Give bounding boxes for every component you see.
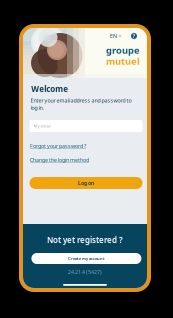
- button[interactable]: Create my account: [31, 253, 141, 264]
- staticText: 24.21.4 (5427): [68, 268, 102, 276]
- button[interactable]: Help: [131, 33, 137, 39]
- staticText: Enter your email address and password to…: [30, 97, 131, 111]
- staticText: Not yet registered ?: [47, 234, 123, 245]
- staticText: EN: [110, 32, 117, 39]
- staticText: groupe: [106, 44, 140, 56]
- staticText: mutuel: [106, 55, 140, 67]
- staticText: Welcome: [31, 83, 68, 94]
- button[interactable]: Change the login method: [30, 156, 89, 164]
- staticText: Change the login method: [30, 156, 89, 164]
- staticText: Log on: [78, 179, 94, 187]
- staticText: My email: [33, 123, 50, 129]
- button[interactable]: EN: [110, 32, 121, 39]
- staticText: Create my account: [68, 256, 105, 261]
- button[interactable]: Forgot your password ?: [30, 142, 86, 150]
- button[interactable]: Log on: [29, 177, 142, 189]
- staticText: Forgot your password ?: [30, 142, 86, 150]
- staticText: ?: [132, 32, 135, 40]
